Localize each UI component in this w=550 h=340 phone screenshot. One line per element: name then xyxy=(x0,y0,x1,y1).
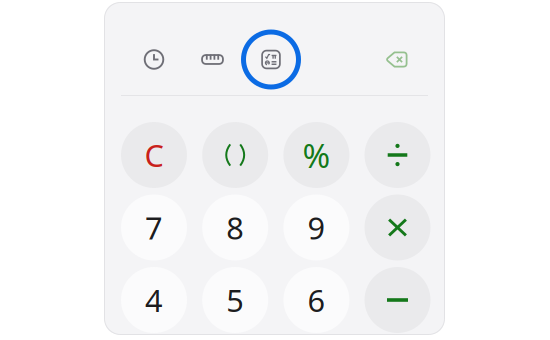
button[interactable]: 9 xyxy=(283,194,349,260)
button[interactable]: Divide xyxy=(364,122,430,188)
staticText: 8 xyxy=(226,207,244,248)
staticText: 7 xyxy=(145,207,163,248)
staticText: 5 xyxy=(226,280,244,320)
button[interactable]: % xyxy=(283,122,349,188)
staticText: 9 xyxy=(307,207,325,248)
button[interactable]: 8 xyxy=(202,194,268,260)
button[interactable]: Scientific xyxy=(240,28,302,90)
button[interactable]: Delete xyxy=(365,28,427,90)
staticText: 4 xyxy=(145,280,163,320)
button[interactable]: 7 xyxy=(121,194,187,260)
button[interactable]: C xyxy=(121,122,187,188)
button[interactable]: 5 xyxy=(202,267,268,333)
button[interactable]: Multiply xyxy=(364,194,430,260)
button[interactable]: Unit conversion xyxy=(181,28,243,90)
button[interactable]: Parentheses xyxy=(202,122,268,188)
button[interactable]: 6 xyxy=(283,267,349,333)
staticText: C xyxy=(144,135,163,175)
button[interactable]: Minus xyxy=(364,267,430,333)
button[interactable]: Recents xyxy=(123,28,185,90)
staticText: % xyxy=(302,133,330,177)
button[interactable]: 4 xyxy=(121,267,187,333)
staticText: 6 xyxy=(307,280,325,320)
